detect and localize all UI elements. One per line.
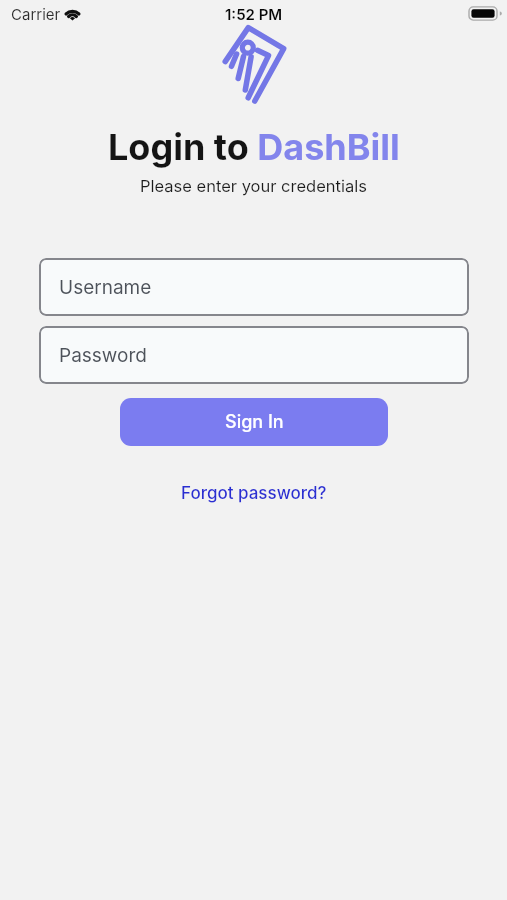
button[interactable]: Forgot password? bbox=[181, 483, 327, 504]
button[interactable]: Username bbox=[39, 258, 469, 316]
staticText: Forgot password? bbox=[181, 483, 327, 504]
staticText: 1:52 PM bbox=[225, 5, 283, 23]
staticText: Carrier bbox=[11, 5, 61, 23]
staticText: Username bbox=[59, 276, 152, 299]
staticText: Please enter your credentials bbox=[140, 176, 367, 196]
staticText: Password bbox=[59, 344, 147, 367]
button[interactable]: Password bbox=[39, 326, 469, 384]
staticText: Login to DashBill bbox=[108, 125, 400, 169]
staticText: Sign In bbox=[225, 411, 284, 433]
button[interactable]: Sign In bbox=[120, 398, 388, 446]
